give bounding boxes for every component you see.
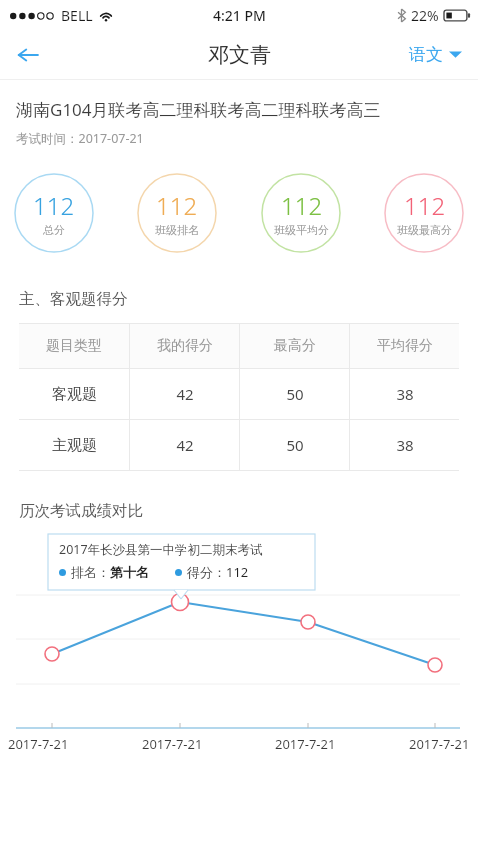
staticText: 最高分 [274,337,316,355]
staticText: 得分： [187,564,226,580]
staticText: 我的得分 [157,337,213,355]
staticText: 4:21 PM [213,6,266,25]
staticText: 38 [396,435,414,455]
button[interactable]: 112 [261,173,341,253]
staticText: 112 [226,563,249,581]
staticText: 班级平均分 [274,223,329,237]
button[interactable]: Back [6,33,50,77]
staticText: 班级排名 [155,223,199,237]
staticText: 历次考试成绩对比 [19,501,459,521]
staticText: 50 [286,384,304,404]
staticText: 第十名 [110,564,149,580]
staticText: 邓文青 [208,42,271,68]
staticText: 2017-7-21 [409,735,470,753]
staticText: 112 [281,189,323,222]
staticText: 题目类型 [46,337,102,355]
staticText: 38 [396,384,414,404]
staticText: 客观题 [52,385,97,404]
staticText: 语文 [409,44,443,65]
button[interactable]: 112 [384,173,464,253]
staticText: 42 [176,384,194,404]
staticText: 2017-7-21 [142,735,203,753]
staticText: BELL [61,6,93,25]
staticText: 2017年长沙县第一中学初二期末考试 [59,541,263,558]
button[interactable]: 2017年长沙县第一中学初二期末考试 [48,534,315,590]
staticText: 2017-7-21 [275,735,336,753]
staticText: 112 [404,189,446,222]
staticText: 112 [156,189,198,222]
staticText: 112 [33,189,75,222]
button[interactable]: 112 [14,173,94,253]
staticText: 42 [176,435,194,455]
staticText: 总分 [43,223,65,237]
button[interactable]: 112 [137,173,217,253]
staticText: 排名： [71,564,110,580]
staticText: 2017-7-21 [8,735,69,753]
staticText: 22% [411,6,439,25]
staticText: 班级最高分 [397,223,452,237]
staticText: 50 [286,435,304,455]
staticText: 主、客观题得分 [19,289,459,309]
button[interactable]: 语文 [405,38,466,71]
staticText: 考试时间：2017-07-21 [16,130,144,147]
staticText: 主观题 [52,436,97,455]
staticText: 平均得分 [377,337,433,355]
staticText: 湖南G104月联考高二理科联考高二理科联考高三 [16,98,381,121]
